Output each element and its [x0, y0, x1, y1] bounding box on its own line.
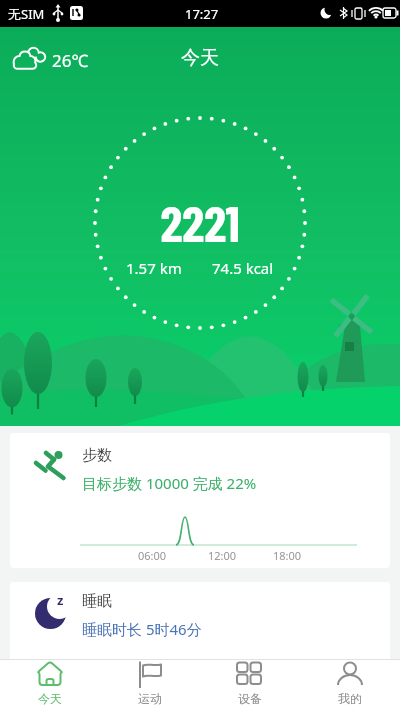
staticText: 我的 — [300, 691, 400, 706]
button[interactable]: 步数 — [10, 433, 390, 568]
button[interactable]: z — [10, 582, 390, 659]
staticText: 1.57 km — [126, 258, 182, 278]
staticText: 2221 — [0, 192, 400, 252]
staticText: z — [57, 591, 64, 609]
staticText: 运动 — [100, 691, 200, 706]
staticText: 今天 — [0, 691, 100, 706]
button[interactable]: 我的 — [300, 660, 400, 711]
staticText: 今天 — [0, 46, 400, 70]
button[interactable]: 今天 — [0, 660, 100, 711]
staticText: 12:00 — [208, 548, 237, 563]
staticText: 步数 — [82, 446, 112, 465]
staticText: 目标步数 10000 完成 22% — [82, 473, 257, 493]
staticText: 无SIM — [8, 5, 45, 23]
staticText: 睡眠 — [82, 592, 112, 611]
button[interactable]: 设备 — [200, 660, 300, 711]
staticText: 睡眠时长 5时46分 — [82, 619, 202, 639]
staticText: 设备 — [200, 691, 300, 706]
staticText: 06:00 — [138, 548, 167, 563]
staticText: 74.5 kcal — [212, 258, 274, 278]
staticText: 26℃ — [52, 49, 89, 72]
staticText: 17:27 — [185, 5, 219, 23]
staticText: 18:00 — [273, 548, 302, 563]
button[interactable]: 运动 — [100, 660, 200, 711]
